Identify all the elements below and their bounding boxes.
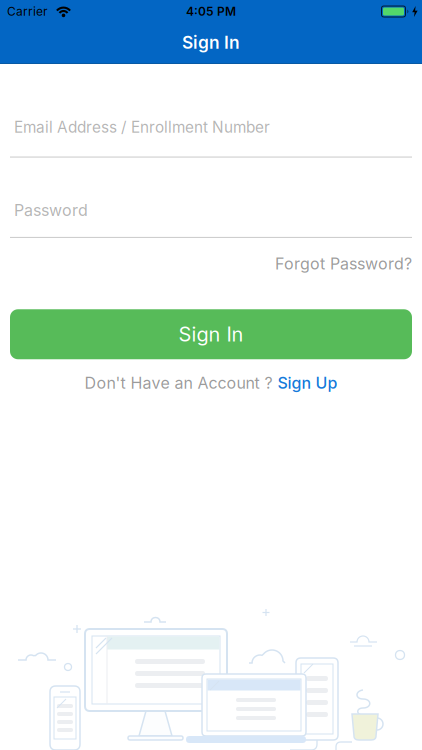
button[interactable]: Forgot Password? (275, 254, 412, 273)
staticText: Sign In (178, 322, 243, 346)
staticText: Carrier (7, 4, 48, 19)
staticText: Password (14, 201, 88, 220)
button[interactable]: Sign Up (277, 373, 337, 393)
staticText: Email Address / Enrollment Number (14, 118, 270, 137)
staticText: Sign In (182, 32, 240, 53)
staticText: Sign Up (277, 373, 337, 393)
button[interactable]: Sign In (10, 309, 412, 359)
button[interactable]: Password (10, 201, 412, 238)
staticText: Don't Have an Account ? (84, 373, 272, 393)
staticText: 4:05 PM (186, 4, 236, 19)
staticText: Forgot Password? (275, 254, 412, 273)
button[interactable]: Email Address / Enrollment Number (10, 118, 412, 158)
